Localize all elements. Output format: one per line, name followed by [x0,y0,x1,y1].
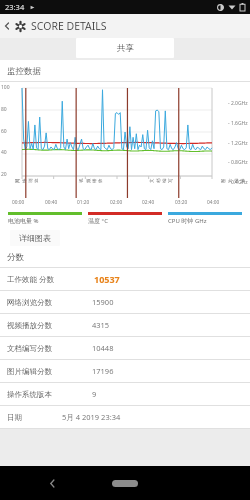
staticText: 详细图表 [19,233,51,243]
staticText: 视频播放 [79,177,103,183]
staticText: 02:00 [110,199,123,206]
staticText: 工作效能 分数 [7,274,54,284]
staticText: 15900 [92,297,114,307]
button[interactable]: 日期 [0,406,250,429]
staticText: 80 [1,106,7,113]
staticText: 03:20 [175,199,188,206]
staticText: 4315 [92,320,110,330]
button[interactable]: 共享 [76,38,174,58]
staticText: 图片编辑 [221,177,245,183]
staticText: CPU 时钟 GHz [168,217,242,225]
staticText: 01:20 [77,199,90,206]
staticText: - 0.4GHz [228,179,248,186]
button[interactable]: 网络浏览分数 [0,291,250,314]
staticText: 00:00 [12,199,25,206]
staticText: 文档编写 [149,177,173,183]
staticText: 60 [1,128,7,135]
button[interactable]: 操作系统版本 [0,383,250,406]
staticText: 5月 4 2019 23:34 [62,412,121,422]
button[interactable]: 图片编辑分数 [0,360,250,383]
staticText: 视频播放分数 [7,321,52,330]
staticText: - 2.0GHz [228,100,248,107]
staticText: SCORE DETAILS [31,19,107,33]
staticText: 文档编写分数 [7,344,52,353]
staticText: 02:40 [142,199,155,206]
staticText: 00:40 [45,199,58,206]
staticText: 分数 [7,252,24,263]
staticText: 日期 [7,413,22,422]
button[interactable]: Back [0,19,14,33]
staticText: 40 [1,149,7,156]
button[interactable]: 文档编写分数 [0,337,250,360]
staticText: 10448 [92,343,114,353]
staticText: 网络浏览分数 [7,298,52,307]
staticText: 操作系统版本 [7,390,52,399]
staticText: 10537 [94,273,120,285]
button[interactable]: Home [112,480,138,487]
staticText: 17196 [92,366,114,376]
staticText: 图片编辑分数 [7,367,52,376]
staticText: 04:00 [207,199,220,206]
staticText: 9 [92,389,97,399]
staticText: 100 [1,84,10,91]
staticText: 20 [1,171,7,178]
button[interactable]: Back [44,475,60,491]
staticText: - 1.6GHz [228,120,248,127]
staticText: 23:34 [5,2,25,12]
button[interactable]: 详细图表 [10,230,60,246]
button[interactable]: 工作效能 分数 [0,268,250,291]
staticText: 网络浏览 [15,177,39,183]
staticText: - 0.8GHz [228,159,248,166]
staticText: 共享 [117,43,134,54]
staticText: 电池电量 % [8,217,82,225]
staticText: - 1.2GHz [228,140,248,147]
staticText: 监控数据 [7,66,41,77]
staticText: 温度 °C [88,217,162,225]
button[interactable]: 视频播放分数 [0,314,250,337]
